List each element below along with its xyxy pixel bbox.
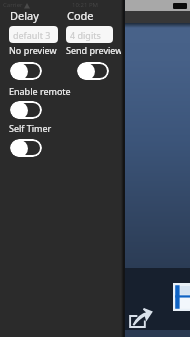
button[interactable] bbox=[10, 62, 42, 80]
staticText: Self Timer bbox=[9, 122, 52, 134]
button[interactable]: Share bbox=[129, 308, 151, 328]
staticText: Send preview bbox=[66, 44, 123, 56]
button[interactable]: 4 digits bbox=[66, 26, 113, 43]
staticText: Enable remote bbox=[9, 85, 71, 97]
staticText: Code bbox=[67, 8, 94, 23]
button[interactable]: Save to album bbox=[173, 283, 190, 311]
staticText: 4 digits bbox=[70, 29, 101, 41]
button[interactable] bbox=[10, 139, 42, 157]
staticText: No preview bbox=[9, 44, 57, 56]
staticText: default 3 bbox=[13, 29, 51, 41]
button[interactable] bbox=[10, 101, 42, 119]
staticText: Carrier bbox=[3, 1, 23, 9]
button[interactable]: default 3 bbox=[9, 26, 58, 43]
button[interactable] bbox=[77, 62, 109, 80]
staticText: Delay bbox=[10, 8, 39, 23]
staticText: 10:21 PM bbox=[72, 1, 98, 9]
